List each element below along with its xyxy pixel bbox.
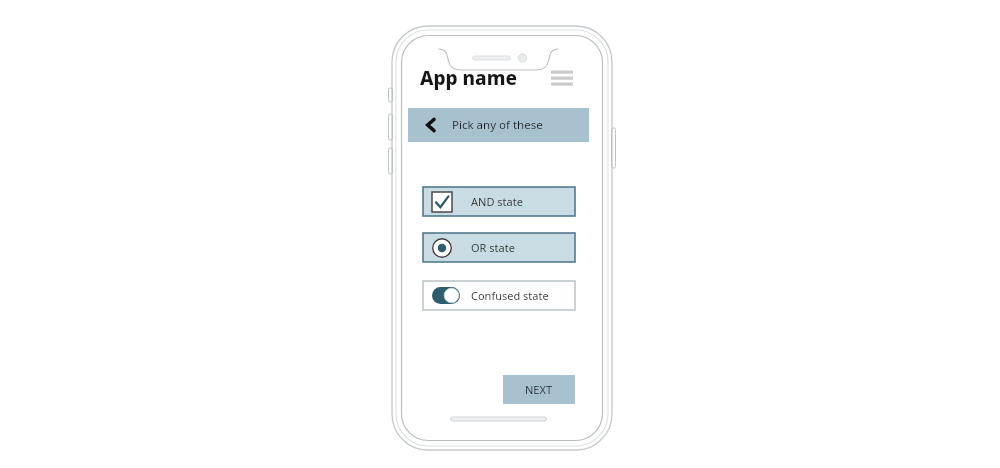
other: Back xyxy=(420,114,442,136)
staticText: AND state xyxy=(471,194,523,209)
button[interactable]: Menu xyxy=(550,66,574,90)
staticText: Confused state xyxy=(471,288,549,303)
button[interactable]: OR state xyxy=(423,233,575,262)
staticText: Pick any of these xyxy=(452,117,543,133)
button[interactable]: Back xyxy=(408,108,589,142)
button[interactable]: AND state xyxy=(423,187,575,216)
staticText: NEXT xyxy=(525,382,553,397)
button[interactable]: NEXT xyxy=(503,375,575,404)
staticText: OR state xyxy=(471,240,515,255)
staticText: App name xyxy=(420,65,517,91)
button[interactable]: Confused state xyxy=(423,281,575,310)
button[interactable]: App name xyxy=(420,64,540,92)
